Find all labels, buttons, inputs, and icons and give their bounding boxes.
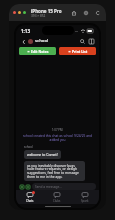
staticText: Clubs: [53, 199, 61, 203]
button[interactable]: Print List: [59, 47, 96, 55]
button[interactable]: Search: [79, 38, 86, 45]
button[interactable]: Clubs: [43, 190, 71, 204]
staticText: school: [24, 145, 33, 149]
button[interactable]: Reload: [94, 9, 102, 17]
button[interactable]: Chats: [16, 190, 43, 204]
button[interactable]: Home: [70, 9, 78, 17]
staticText: Print List: [72, 49, 88, 54]
staticText: Chats: [26, 199, 34, 203]
staticText: welcome to Comet!: [27, 152, 58, 157]
staticText: 393 × 852: [31, 14, 46, 18]
button[interactable]: Back: [20, 38, 27, 45]
staticText: Edit Notes: [31, 49, 49, 54]
staticText: 1:07 PM: [52, 128, 63, 132]
staticText: Spark: [81, 199, 89, 203]
staticText: 1:13: [21, 28, 30, 34]
staticText: Send a message...: [35, 185, 62, 189]
staticText: school created this chat as school 9/24/…: [20, 134, 95, 142]
button[interactable]: Camera: [25, 184, 30, 189]
button[interactable]: Attach file: [19, 184, 24, 189]
button[interactable]: Spark: [71, 190, 99, 204]
button[interactable]: as you inevitably discover bugs, have fe…: [24, 161, 85, 181]
button[interactable]: Settings: [82, 9, 90, 17]
staticText: school: [35, 38, 49, 44]
staticText: as you inevitably discover bugs, have fe…: [27, 163, 82, 179]
button[interactable]: Send a message...: [32, 183, 96, 190]
button[interactable]: Edit Notes: [19, 47, 56, 55]
button[interactable]: More options: [88, 38, 95, 45]
staticText: ...: [75, 28, 79, 33]
staticText: iPhone 15 Pro: [31, 8, 62, 14]
button[interactable]: welcome to Comet!: [24, 150, 61, 159]
